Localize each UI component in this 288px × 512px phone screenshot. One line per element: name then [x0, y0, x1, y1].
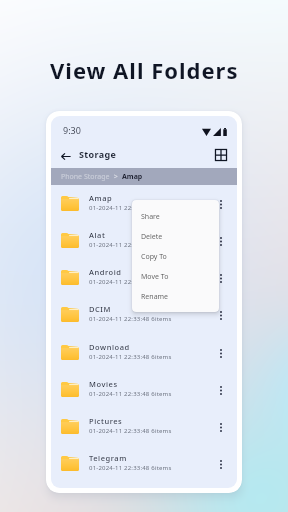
staticText: Delete — [141, 232, 163, 242]
staticText: > — [110, 172, 122, 182]
staticText: 01-2024-11 22:33:48 6items — [89, 204, 172, 212]
staticText: 9:30 — [63, 124, 81, 136]
button[interactable]: More options — [215, 308, 227, 324]
button[interactable]: Alat — [51, 223, 237, 260]
button[interactable]: More options — [215, 197, 227, 213]
button[interactable]: Copy To — [132, 247, 219, 267]
button[interactable]: Download — [51, 335, 237, 372]
button[interactable]: More options — [215, 271, 227, 287]
staticText: Amap — [122, 172, 143, 182]
button[interactable]: Telegram — [51, 446, 237, 483]
button[interactable]: Rename — [132, 287, 219, 307]
staticText: 01-2024-11 22:33:48 6items — [89, 241, 172, 249]
staticText: 01-2024-11 22:33:48 6items — [89, 353, 172, 361]
button[interactable]: More options — [215, 420, 227, 436]
staticText: Move To — [141, 272, 169, 282]
button[interactable]: Amap — [51, 186, 237, 223]
staticText: DCIM — [89, 304, 112, 314]
staticText: Alat — [89, 230, 106, 240]
button[interactable]: Grid view — [211, 145, 231, 165]
staticText: Download — [89, 342, 130, 352]
button[interactable]: Movies — [51, 372, 237, 409]
staticText: Telegram — [89, 453, 127, 463]
button[interactable]: DCIM — [51, 297, 237, 334]
staticText: Pictures — [89, 416, 123, 426]
staticText: 01-2024-11 22:33:48 6items — [89, 278, 172, 286]
staticText: 01-2024-11 22:33:48 6items — [89, 315, 172, 323]
staticText: 01-2024-11 22:33:48 6items — [89, 390, 172, 398]
button[interactable]: Move To — [132, 267, 219, 287]
staticText: 01-2024-11 22:33:48 6items — [89, 427, 172, 435]
staticText: Phone Storage — [61, 172, 110, 182]
staticText: Storage — [79, 148, 117, 160]
button[interactable]: More options — [215, 234, 227, 250]
button[interactable]: More options — [215, 346, 227, 362]
staticText: Share — [141, 212, 160, 222]
button[interactable]: Back — [57, 147, 75, 165]
staticText: Copy To — [141, 252, 167, 262]
button[interactable]: More options — [215, 383, 227, 399]
staticText: Rename — [141, 292, 169, 302]
button[interactable]: Android — [51, 260, 237, 297]
staticText: View All Folders — [50, 55, 239, 85]
button[interactable]: More options — [215, 457, 227, 473]
staticText: 01-2024-11 22:33:48 6items — [89, 464, 172, 472]
staticText: Amap — [89, 193, 113, 203]
button[interactable]: Pictures — [51, 409, 237, 446]
staticText: Android — [89, 267, 122, 277]
button[interactable]: Delete — [132, 227, 219, 247]
staticText: Movies — [89, 379, 118, 389]
button[interactable]: Share — [132, 207, 219, 227]
